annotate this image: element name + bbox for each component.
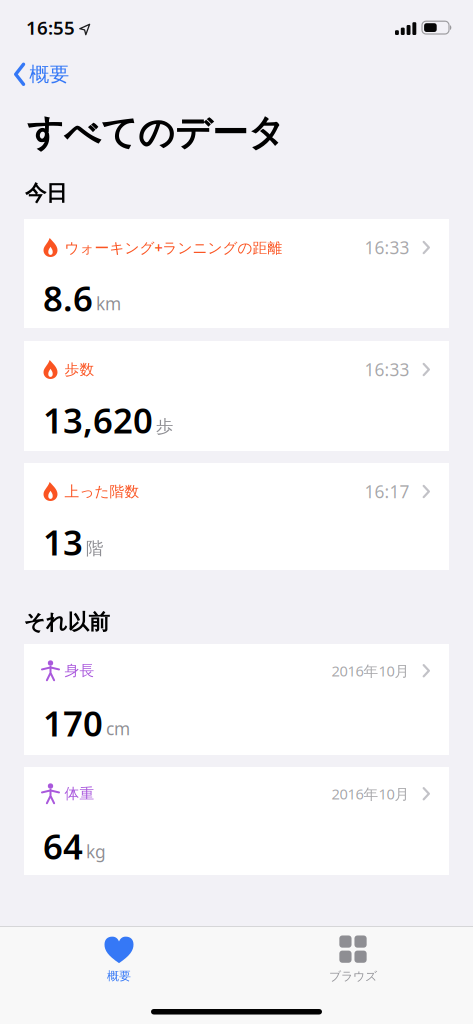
- staticText: 歩: [156, 416, 173, 437]
- staticText: 体重: [64, 785, 94, 803]
- staticText: cm: [106, 717, 130, 740]
- button[interactable]: 歩数: [24, 341, 449, 451]
- staticText: すべてのデータ: [27, 111, 285, 155]
- staticText: 170: [43, 700, 103, 746]
- staticText: 階: [86, 538, 103, 559]
- staticText: 16:55: [26, 15, 75, 40]
- staticText: 2016年10月: [332, 784, 410, 803]
- button[interactable]: Back: [14, 62, 69, 87]
- staticText: 16:17: [365, 480, 410, 503]
- staticText: 歩数: [64, 360, 94, 378]
- staticText: 概要: [29, 62, 69, 87]
- staticText: 16:33: [365, 236, 410, 259]
- staticText: 身長: [64, 662, 94, 680]
- button[interactable]: 身長: [24, 644, 449, 755]
- staticText: それ以前: [23, 609, 109, 635]
- staticText: 2016年10月: [332, 661, 410, 680]
- staticText: ブラウズ: [329, 969, 377, 983]
- staticText: 今日: [25, 180, 67, 206]
- staticText: 8.6: [43, 275, 93, 321]
- staticText: 上った階数: [64, 482, 139, 500]
- staticText: km: [96, 292, 121, 315]
- staticText: 13: [43, 519, 83, 565]
- button[interactable]: ブラウズ: [298, 933, 408, 985]
- button[interactable]: 体重: [24, 767, 449, 875]
- staticText: 16:33: [365, 358, 410, 381]
- staticText: 13,620: [43, 397, 153, 443]
- staticText: ウォーキング+ランニングの距離: [64, 238, 282, 257]
- button[interactable]: 上った階数: [24, 463, 449, 570]
- staticText: kg: [86, 840, 106, 863]
- button[interactable]: 概要: [64, 934, 174, 986]
- button[interactable]: ウォーキング+ランニングの距離: [24, 219, 449, 328]
- staticText: 概要: [107, 969, 131, 983]
- staticText: 64: [43, 823, 83, 869]
